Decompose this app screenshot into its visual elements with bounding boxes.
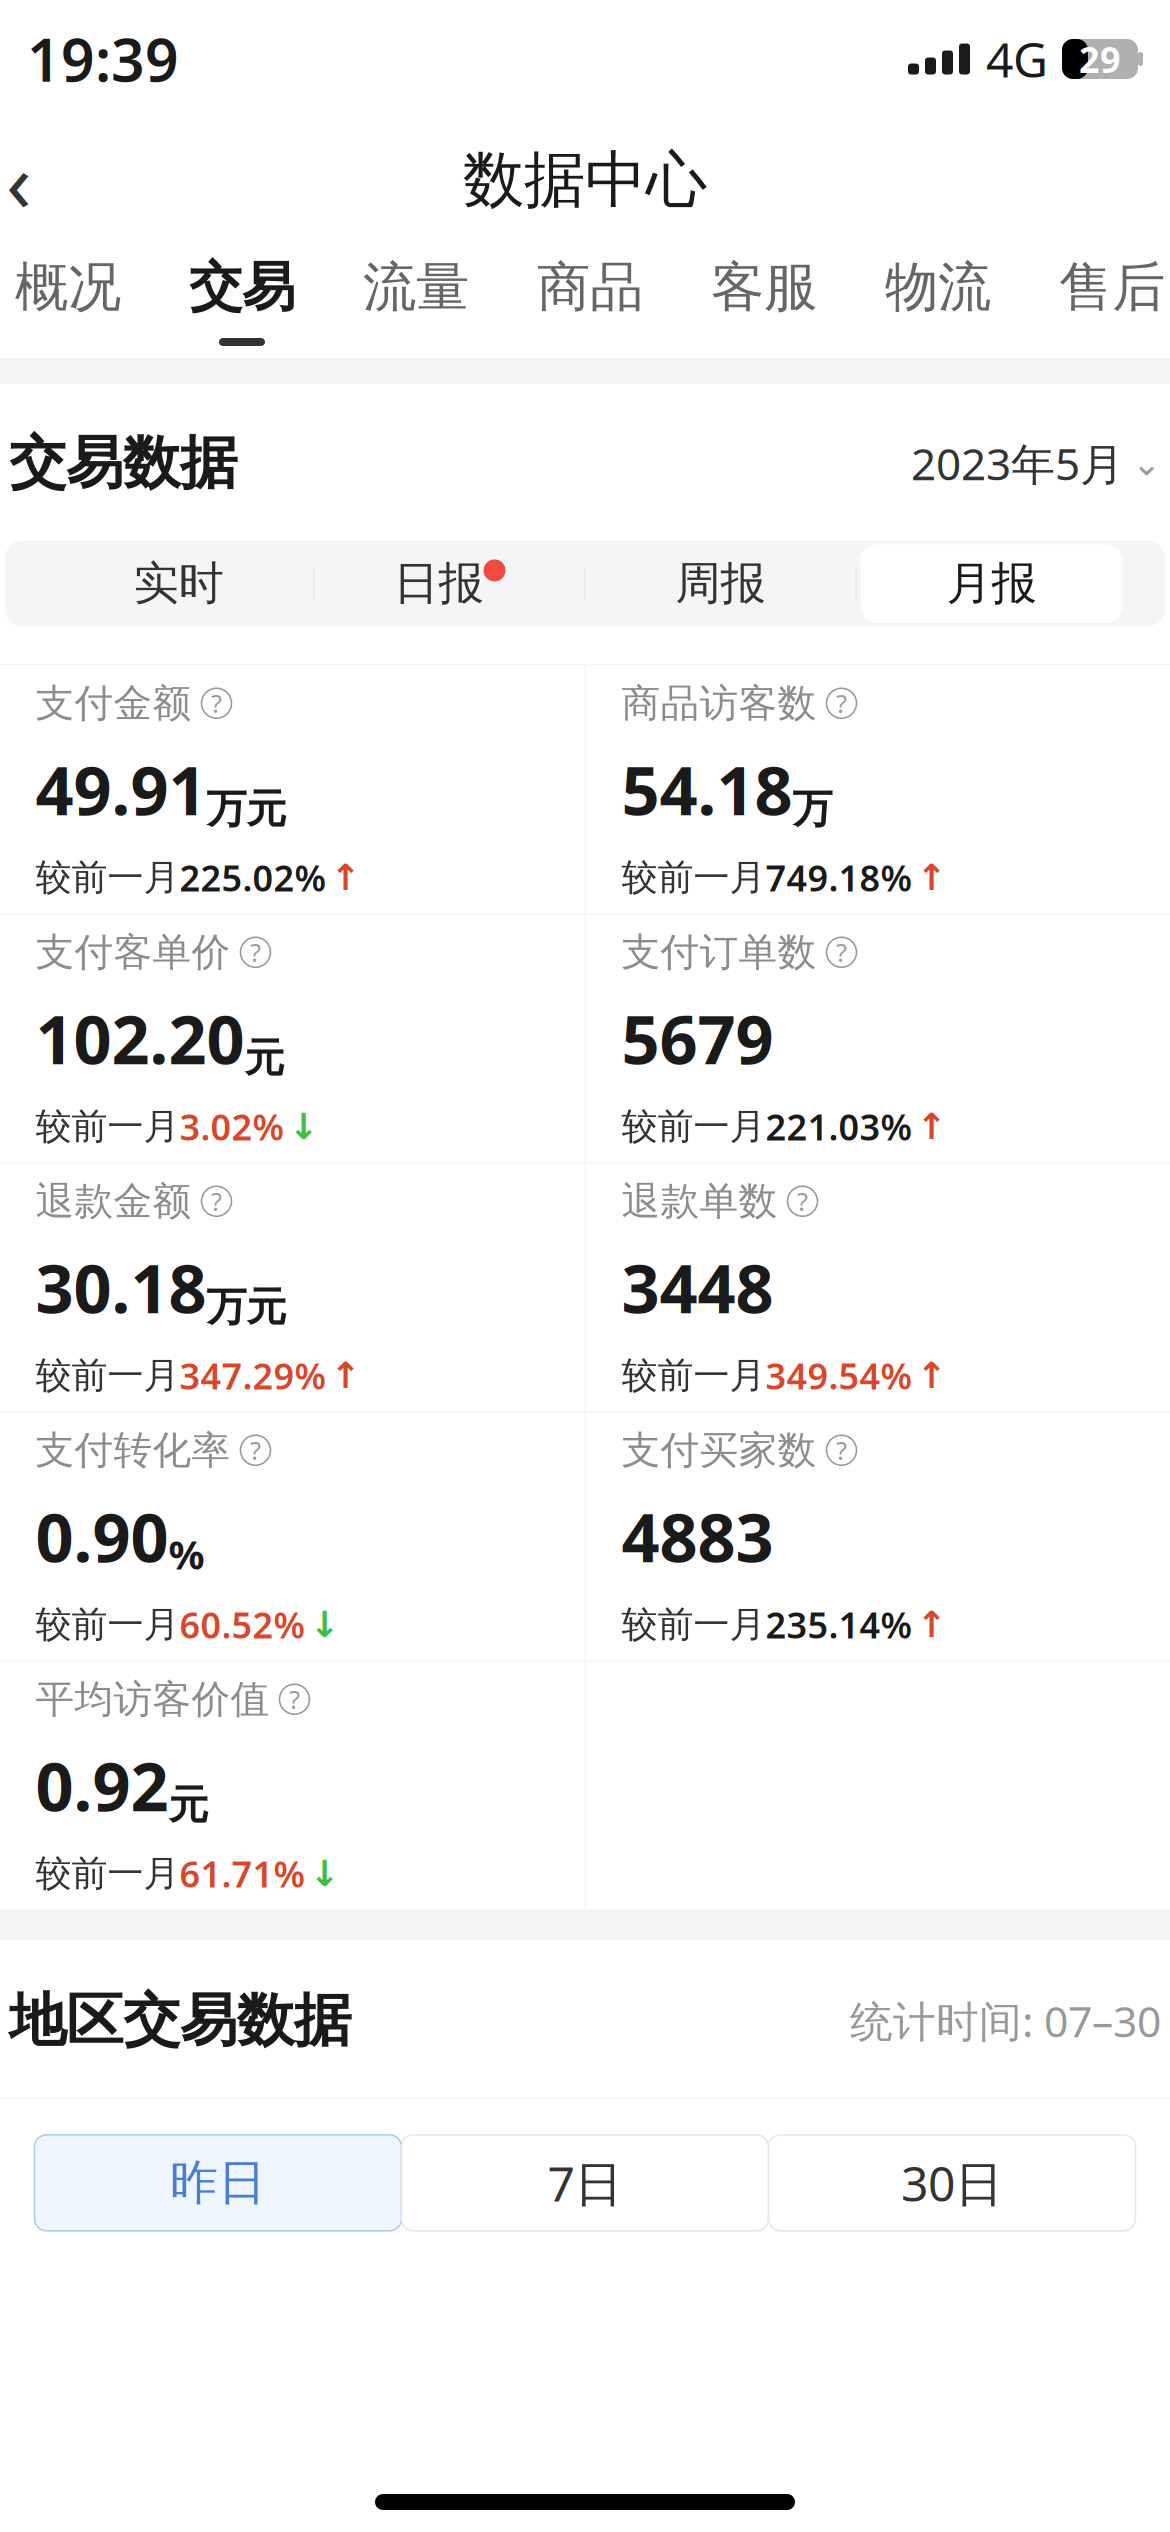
staticText: 交易 (189, 254, 295, 320)
staticText: 月报 (946, 556, 1036, 611)
staticText: ? (211, 686, 222, 720)
button[interactable]: 月报 (856, 540, 1126, 626)
staticText: 349.54% (765, 1351, 912, 1399)
staticText: 支付转化率 (35, 1426, 230, 1474)
staticText: 概况 (15, 254, 121, 320)
staticText: 万 (792, 784, 832, 833)
staticText: 19:39 (27, 20, 179, 98)
staticText: % (168, 1527, 204, 1580)
staticText: 54.18 (621, 745, 792, 833)
staticText: 2023年5月 (911, 434, 1124, 492)
staticText: 地区交易数据 (9, 1985, 351, 2056)
staticText: 支付买家数 (621, 1426, 816, 1474)
staticText: 0.90 (35, 1492, 168, 1580)
staticText: 商品 (537, 254, 643, 320)
staticText: 支付订单数 (621, 928, 816, 976)
staticText: 347.29% (179, 1351, 326, 1399)
staticText: 售后 (1059, 254, 1165, 320)
staticText: 221.03% (765, 1102, 912, 1150)
staticText: 30日 (901, 2151, 1003, 2215)
staticText: 749.18% (765, 853, 912, 901)
staticText: 3.02% (179, 1102, 284, 1150)
staticText: 支付客单价 (35, 928, 230, 976)
staticText: 较前一月 (621, 855, 765, 899)
staticText: 225.02% (179, 853, 326, 901)
staticText: 周报 (675, 556, 765, 611)
staticText: ↓ (309, 1604, 339, 1645)
button[interactable]: 商品访客数 (585, 639, 1170, 939)
staticText: 235.14% (765, 1600, 912, 1648)
button[interactable]: 昨日 (34, 2135, 401, 2231)
button[interactable]: 售后 (1025, 228, 1170, 358)
button[interactable]: 退款金额 (0, 1137, 584, 1437)
button[interactable]: 支付订单数 (585, 888, 1170, 1188)
staticText: ⌄ (1132, 443, 1161, 483)
button[interactable]: 支付客单价 (0, 888, 584, 1188)
button[interactable]: 支付转化率 (0, 1386, 584, 1686)
staticText: ? (250, 935, 261, 969)
staticText: 较前一月 (35, 1602, 179, 1646)
staticText: 60.52% (179, 1600, 305, 1648)
button[interactable]: 流量 (329, 228, 503, 358)
staticText: 日报 (393, 556, 483, 611)
staticText: 退款单数 (621, 1177, 777, 1225)
button[interactable]: 30日 (768, 2135, 1135, 2231)
staticText: 支付金额 (35, 679, 191, 727)
staticText: ↓ (288, 1106, 318, 1147)
staticText: 较前一月 (35, 1851, 179, 1895)
staticText: ↑ (330, 857, 360, 898)
staticText: 商品访客数 (621, 679, 816, 727)
button[interactable]: 退款单数 (585, 1137, 1170, 1437)
staticText: 实时 (133, 556, 223, 611)
staticText: 29 (1079, 35, 1121, 83)
staticText: 0.92 (35, 1741, 168, 1829)
staticText: 元 (244, 1033, 284, 1082)
staticText: 较前一月 (35, 1104, 179, 1148)
button[interactable]: 物流 (851, 228, 1025, 358)
staticText: 61.71% (179, 1849, 305, 1897)
staticText: 较前一月 (621, 1602, 765, 1646)
button[interactable]: 周报 (585, 540, 855, 626)
staticText: 万元 (206, 784, 286, 833)
staticText: 30.18 (35, 1243, 206, 1331)
staticText: 较前一月 (621, 1104, 765, 1148)
staticText: 交易数据 (9, 428, 237, 498)
button[interactable]: 客服 (677, 228, 851, 358)
button[interactable]: 7日 (401, 2135, 768, 2231)
button[interactable]: 支付金额 (0, 639, 584, 939)
button[interactable]: 返回 (0, 132, 67, 228)
button[interactable]: 商品 (503, 228, 677, 358)
staticText: ? (836, 1433, 847, 1467)
staticText: 5679 (621, 994, 773, 1082)
staticText: ↑ (330, 1355, 360, 1396)
staticText: 较前一月 (35, 855, 179, 899)
staticText: 统计时间: 07–30 (850, 1992, 1161, 2049)
staticText: 较前一月 (35, 1353, 179, 1397)
staticText: 4G (986, 27, 1048, 91)
staticText: ↑ (916, 1106, 946, 1147)
staticText: 万元 (206, 1282, 286, 1331)
button[interactable]: 交易 (155, 228, 329, 358)
staticText: ? (836, 935, 847, 969)
staticText: 退款金额 (35, 1177, 191, 1225)
button[interactable]: 日报 (314, 540, 584, 626)
button[interactable]: 实时 (43, 540, 313, 626)
staticText: 流量 (363, 254, 469, 320)
staticText: 较前一月 (621, 1353, 765, 1397)
staticText: 数据中心 (463, 142, 707, 218)
staticText: ? (211, 1184, 222, 1218)
button[interactable]: 支付买家数 (585, 1386, 1170, 1686)
button[interactable]: 2023年5月 (911, 434, 1161, 492)
staticText: 4883 (621, 1492, 773, 1580)
staticText: 昨日 (170, 2153, 266, 2212)
button[interactable]: 概况 (0, 228, 155, 358)
staticText: 7日 (547, 2151, 622, 2215)
button[interactable]: 平均访客价值 (0, 1635, 584, 1935)
staticText: 平均访客价值 (35, 1675, 269, 1723)
staticText: ? (836, 686, 847, 720)
staticText: 客服 (711, 254, 817, 320)
staticText: ? (797, 1184, 808, 1218)
staticText: ? (250, 1433, 261, 1467)
staticText: 元 (168, 1780, 208, 1829)
staticText: 物流 (885, 254, 991, 320)
